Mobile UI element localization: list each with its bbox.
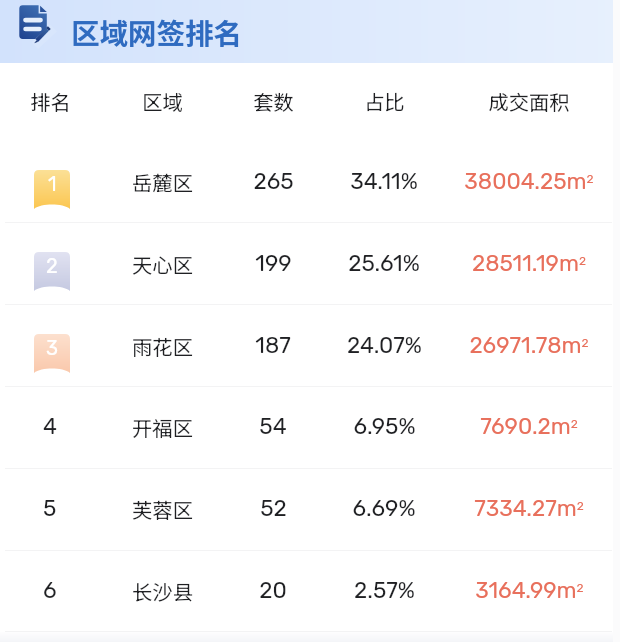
button[interactable]	[0, 140, 620, 222]
button[interactable]	[0, 386, 620, 468]
staticText: 20	[259, 577, 287, 604]
staticText: 25.61%	[348, 250, 420, 277]
button[interactable]: 区域网签排名	[0, 0, 620, 63]
staticText: 28511.19m2	[472, 250, 586, 277]
button[interactable]	[0, 549, 620, 631]
staticText: 芙蓉区	[132, 494, 193, 523]
staticText: 38004.25m2	[464, 168, 594, 195]
button[interactable]	[0, 304, 620, 386]
button[interactable]: 成交面积	[434, 80, 620, 120]
staticText: 187	[255, 332, 291, 359]
staticText: 34.11%	[350, 168, 418, 195]
staticText: 开福区	[132, 412, 193, 441]
other: 区域网签排名	[19, 5, 60, 44]
staticText: 54	[259, 413, 287, 440]
staticText: 26971.78m2	[469, 332, 589, 359]
staticText: 6.69%	[352, 495, 416, 522]
staticText: 3164.99m2	[475, 577, 584, 604]
staticText: 长沙县	[132, 576, 193, 605]
staticText: 区域网签排名	[71, 11, 243, 52]
staticText: 套数	[253, 86, 294, 115]
staticText: 2	[46, 254, 58, 278]
staticText: 52	[260, 495, 287, 522]
staticText: 1	[48, 172, 57, 196]
button[interactable]	[0, 467, 620, 549]
button[interactable]	[0, 222, 620, 304]
staticText: 占比	[364, 86, 405, 115]
staticText: 2.57%	[354, 577, 415, 604]
staticText: 24.07%	[347, 332, 422, 359]
staticText: 成交面积	[488, 86, 570, 115]
staticText: 265	[253, 168, 294, 195]
staticText: 6.95%	[353, 413, 416, 440]
staticText: 3	[46, 336, 59, 360]
staticText: 排名	[30, 86, 71, 115]
button[interactable]: 区域	[106, 80, 218, 120]
button[interactable]: 排名	[0, 80, 100, 120]
staticText: 区域	[142, 86, 183, 115]
staticText: 雨花区	[132, 331, 193, 360]
button[interactable]: 套数	[217, 80, 329, 120]
staticText: 天心区	[132, 249, 193, 278]
staticText: 7690.2m2	[480, 413, 578, 440]
staticText: 199	[255, 250, 292, 277]
staticText: 4	[43, 413, 57, 440]
staticText: 7334.27m2	[474, 495, 584, 522]
staticText: 5	[43, 495, 57, 522]
staticText: 6	[43, 577, 57, 604]
staticText: 岳麓区	[132, 167, 193, 196]
button[interactable]: 占比	[328, 80, 440, 120]
